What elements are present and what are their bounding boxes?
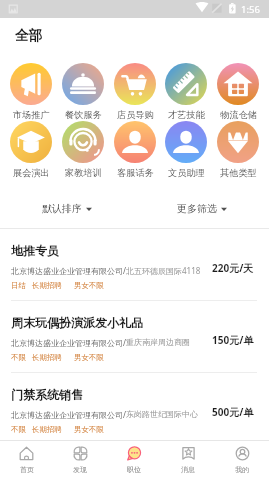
staticText: 长期招聘 (32, 281, 62, 290)
staticText: 北五环德辰国际4118 (126, 265, 201, 276)
button[interactable]: 更多筛选 (134, 194, 269, 222)
button[interactable]: 发现 (53, 441, 107, 478)
staticText: 500元/单 (212, 405, 254, 419)
staticText: 文员助理 (168, 167, 205, 179)
staticText: 220元/天 (212, 261, 254, 275)
button[interactable]: 首页 (0, 441, 53, 478)
staticText: 首页 (20, 465, 34, 474)
staticText: 不限 (11, 425, 26, 434)
button[interactable]: 物流仓储 (217, 63, 259, 121)
staticText: 门禁系统销售 (11, 387, 83, 402)
button[interactable]: 客服话务 (114, 121, 156, 179)
button[interactable]: 其他类型 (217, 121, 259, 179)
staticText: 客服话务 (117, 167, 154, 179)
staticText: 其他类型 (220, 167, 257, 179)
staticText: 市场推广 (13, 109, 50, 121)
staticText: 男女不限 (74, 281, 104, 290)
staticText: 重庆南岸周边商圈 (126, 337, 190, 347)
staticText: 长期招聘 (32, 353, 62, 362)
staticText: 我的 (235, 465, 249, 474)
button[interactable]: 餐饮服务 (62, 63, 104, 121)
staticText: 默认排序 (42, 202, 82, 215)
staticText: 北京博达盛业企业管理有限公司/ (11, 337, 126, 348)
staticText: 男女不限 (74, 425, 104, 434)
staticText: 店员导购 (117, 109, 154, 121)
staticText: 更多筛选 (177, 202, 217, 215)
button[interactable]: 职位 (107, 441, 161, 478)
staticText: 发现 (73, 465, 87, 474)
staticText: 北京博达盛业企业管理有限公司/ (11, 265, 126, 276)
staticText: 北京博达盛业企业管理有限公司/ (11, 409, 126, 420)
staticText: 才艺技能 (168, 109, 205, 121)
staticText: 周末玩偶扮演派发小礼品 (11, 315, 143, 330)
staticText: 150元/单 (212, 333, 254, 347)
staticText: 展会演出 (13, 167, 50, 179)
button[interactable]: 默认排序 (0, 194, 134, 222)
staticText: 东岗路世纪国际中心 (126, 409, 198, 419)
button[interactable]: 才艺技能 (165, 63, 207, 121)
staticText: 男女不限 (74, 353, 104, 362)
button[interactable]: 家教培训 (62, 121, 104, 179)
staticText: 全部 (15, 27, 43, 44)
button[interactable]: 消息 (161, 441, 215, 478)
staticText: 1:56 (241, 3, 260, 16)
staticText: 餐饮服务 (65, 109, 102, 121)
button[interactable]: 展会演出 (10, 121, 52, 179)
button[interactable]: 周末玩偶扮演派发小礼品 (0, 301, 269, 373)
button[interactable]: 门禁系统销售 (0, 373, 269, 440)
staticText: 地推专员 (11, 243, 59, 258)
staticText: 消息 (181, 465, 195, 474)
staticText: 长期招聘 (32, 425, 62, 434)
staticText: 职位 (127, 465, 141, 474)
button[interactable]: 店员导购 (114, 63, 156, 121)
button[interactable]: 市场推广 (10, 63, 52, 121)
staticText: 家教培训 (65, 167, 102, 179)
button[interactable]: 文员助理 (165, 121, 207, 179)
button[interactable]: 我的 (215, 441, 269, 478)
button[interactable]: 地推专员 (0, 229, 269, 301)
staticText: 日结 (11, 281, 26, 290)
staticText: 物流仓储 (220, 109, 257, 121)
staticText: 不限 (11, 353, 26, 362)
